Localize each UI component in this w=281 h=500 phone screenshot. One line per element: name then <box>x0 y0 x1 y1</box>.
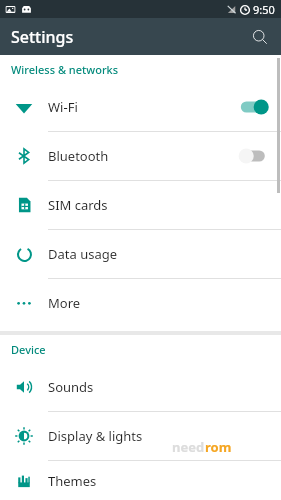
staticText: Wireless & networks <box>11 62 119 77</box>
staticText: 9:50 <box>253 2 275 17</box>
staticText: Settings <box>11 26 74 48</box>
staticText: Sounds <box>48 378 281 396</box>
staticText: Bluetooth <box>48 147 239 165</box>
staticText: Data usage <box>48 245 281 263</box>
staticText: More <box>48 294 281 312</box>
button[interactable]: Search <box>247 24 273 50</box>
button[interactable]: SIM cards <box>0 181 281 229</box>
staticText: need <box>172 438 205 456</box>
button[interactable]: More <box>0 279 281 327</box>
staticText: SIM cards <box>48 196 281 214</box>
button[interactable]: Data usage <box>0 230 281 278</box>
button[interactable]: Display & lights <box>0 412 281 460</box>
button[interactable]: Themes <box>0 461 281 500</box>
staticText: Display & lights <box>48 427 281 445</box>
button[interactable]: Sounds <box>0 363 281 411</box>
button[interactable]: Wi-Fi <box>0 83 281 131</box>
staticText: Wi-Fi <box>48 98 239 116</box>
staticText: rom <box>205 438 232 456</box>
staticText: Themes <box>48 472 281 490</box>
staticText: Device <box>11 342 46 357</box>
button[interactable]: Bluetooth <box>0 132 281 180</box>
